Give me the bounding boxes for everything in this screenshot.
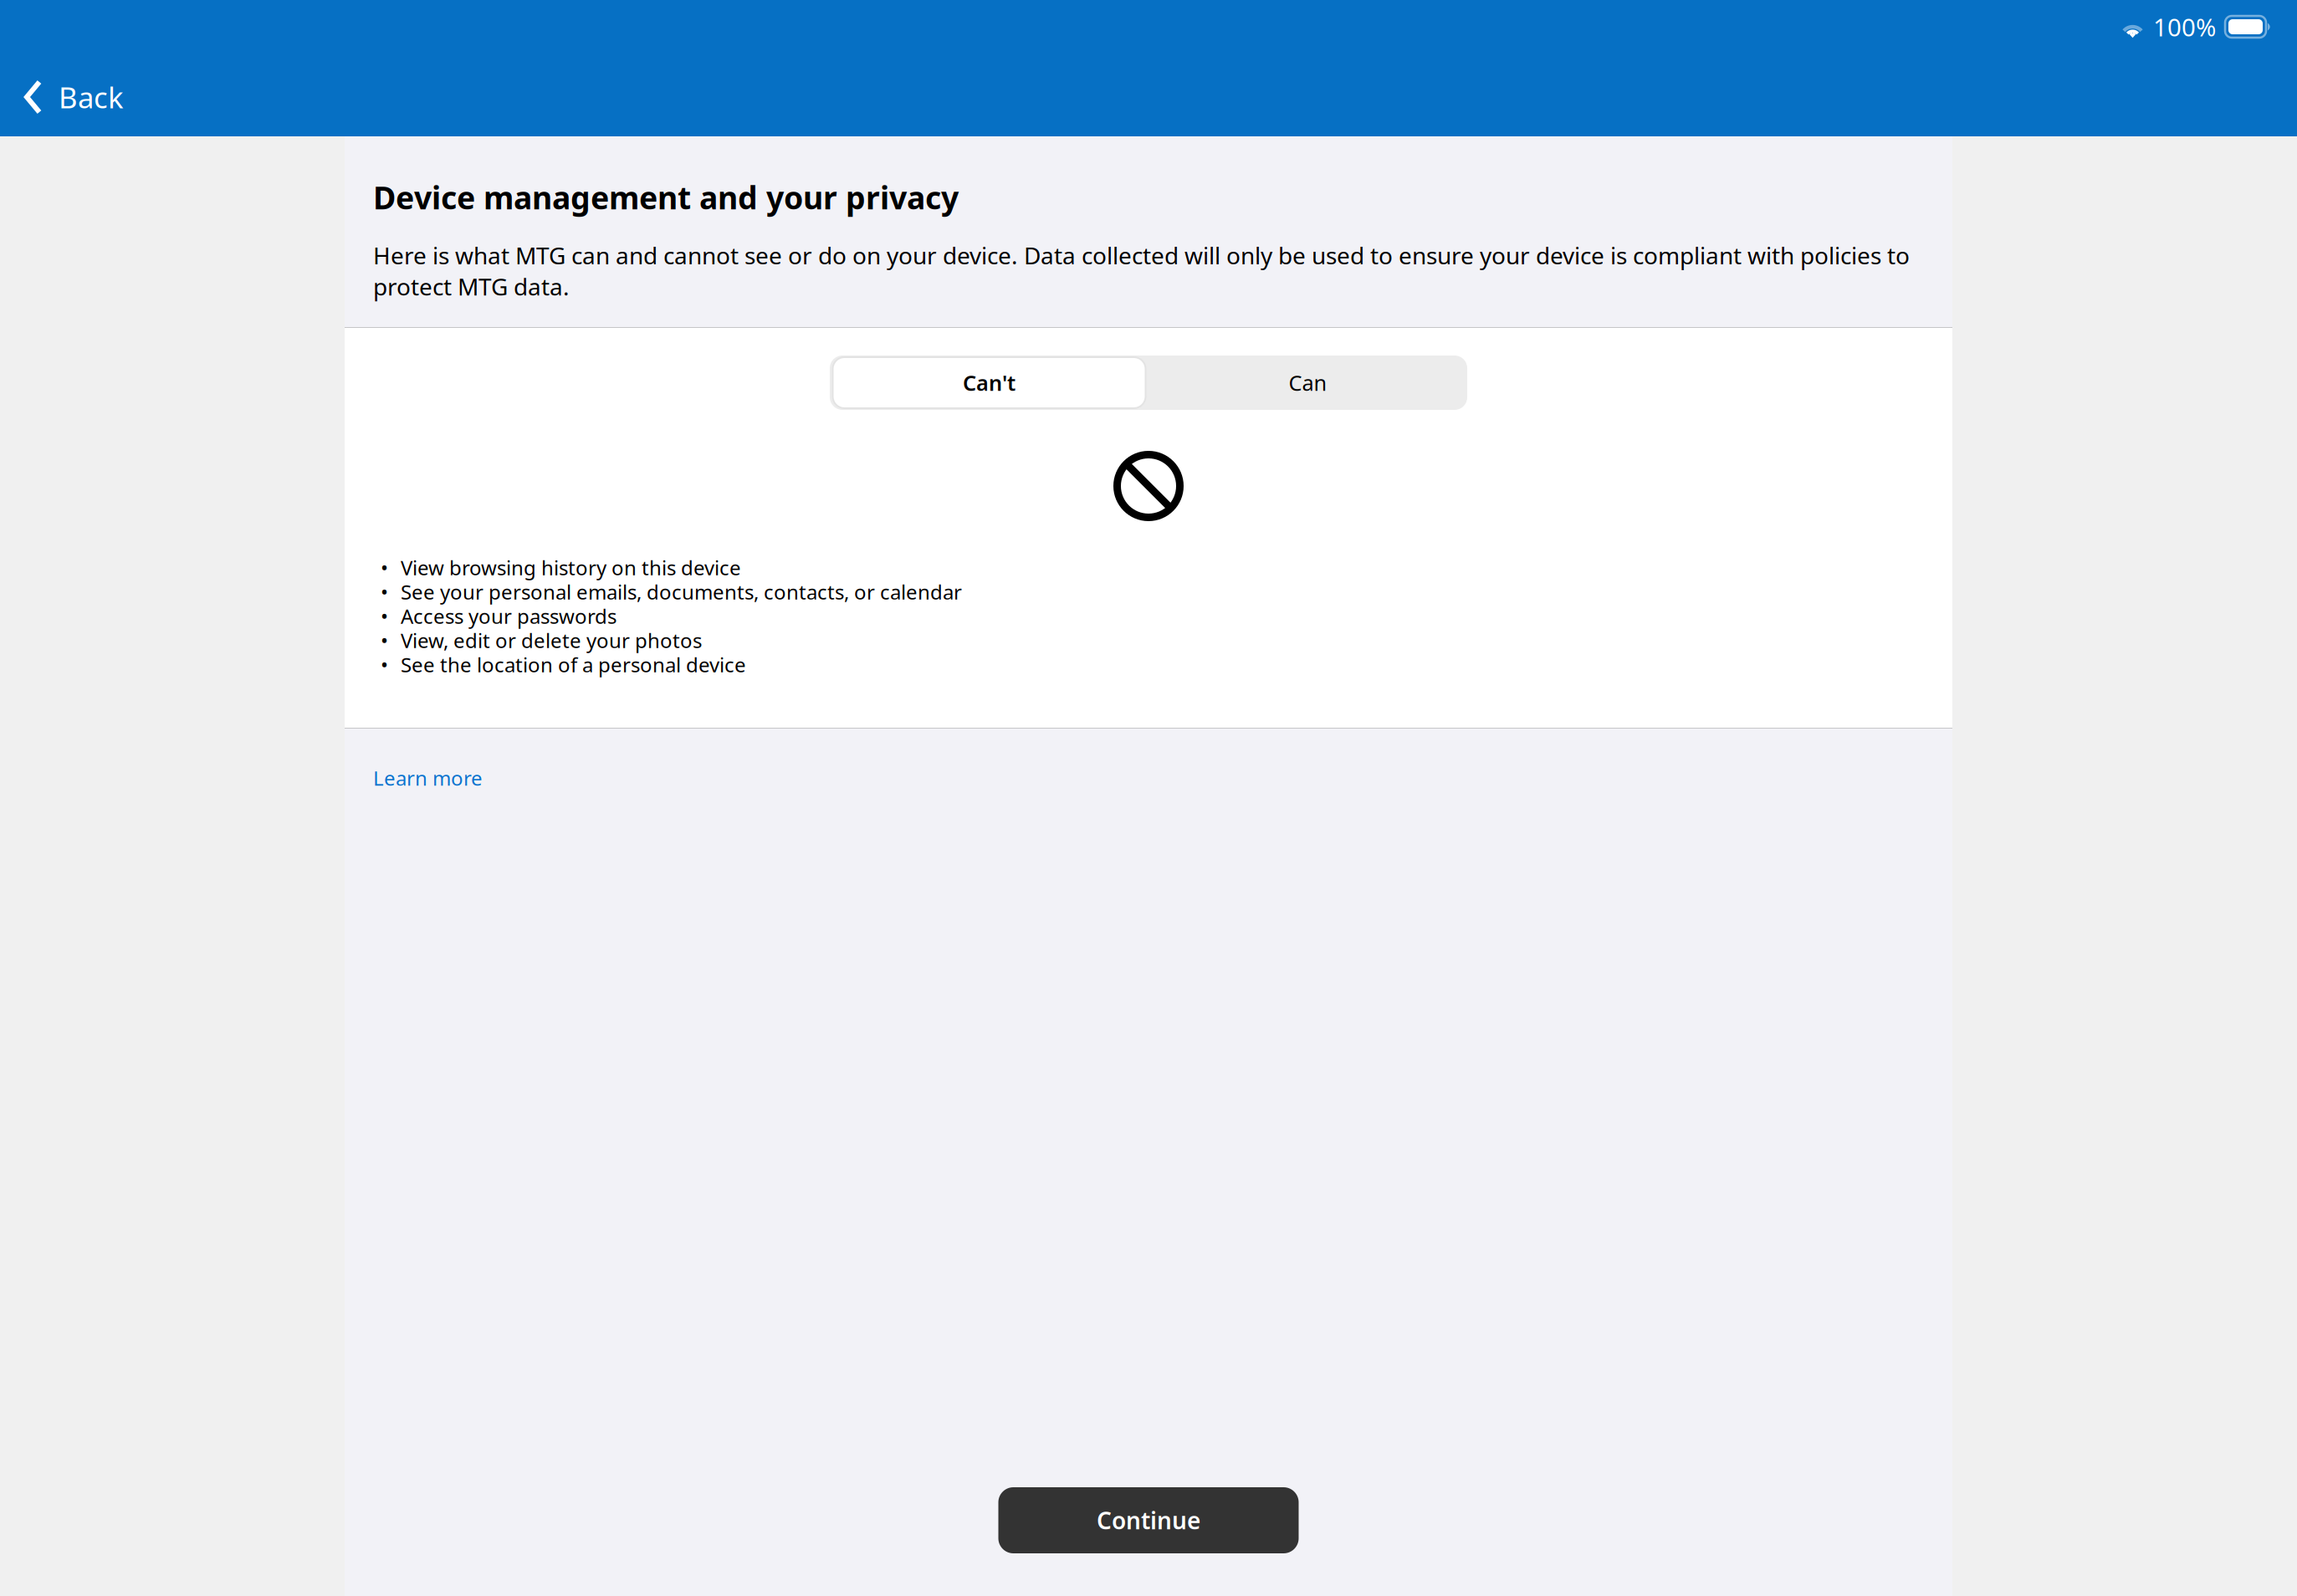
- staticText: Learn more: [373, 765, 483, 791]
- staticText: Access your passwords: [401, 603, 616, 629]
- staticText: Can't: [963, 369, 1015, 397]
- staticText: See your personal emails, documents, con…: [401, 579, 962, 605]
- staticText: •: [381, 603, 388, 629]
- staticText: Can: [1289, 369, 1327, 397]
- staticText: Here is what MTG can and cannot see or d…: [373, 240, 1910, 302]
- staticText: View browsing history on this device: [401, 554, 741, 581]
- staticText: Back: [59, 78, 124, 116]
- button[interactable]: Back: [3, 64, 146, 130]
- staticText: 100%: [2153, 10, 2216, 43]
- button[interactable]: Learn more: [371, 755, 484, 801]
- button[interactable]: Continue: [998, 1487, 1299, 1553]
- staticText: •: [381, 554, 388, 581]
- button[interactable]: Can: [1148, 356, 1467, 410]
- staticText: •: [381, 579, 388, 605]
- staticText: Continue: [1097, 1505, 1200, 1536]
- staticText: View, edit or delete your photos: [401, 627, 702, 654]
- button[interactable]: Can't: [830, 356, 1148, 410]
- staticText: •: [381, 651, 388, 678]
- staticText: Device management and your privacy: [373, 176, 959, 218]
- staticText: See the location of a personal device: [401, 651, 746, 678]
- staticText: •: [381, 627, 388, 654]
